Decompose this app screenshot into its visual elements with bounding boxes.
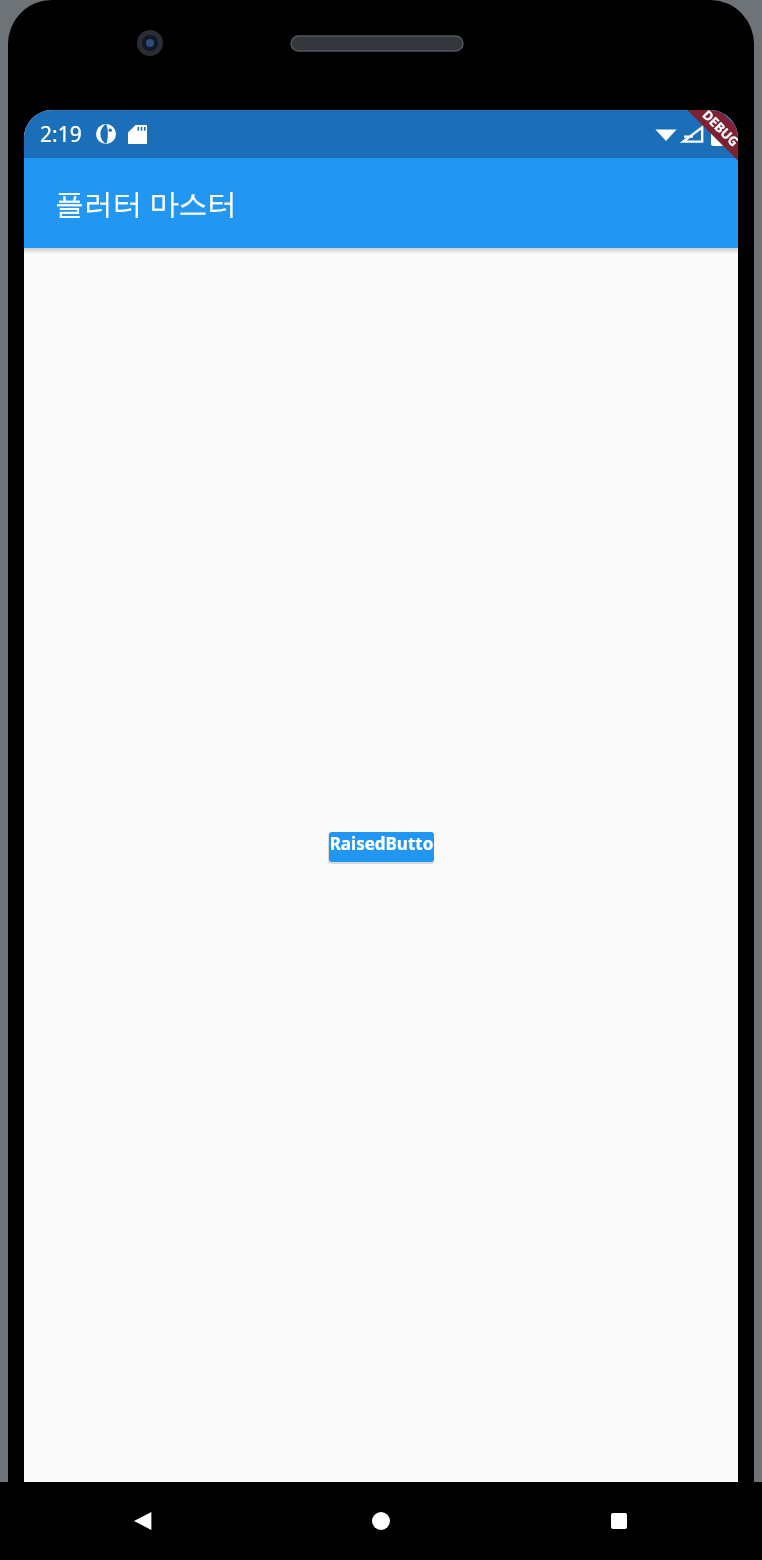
staticText: 플러터 마스터 <box>55 183 237 223</box>
button[interactable]: RaisedButton <box>329 832 434 862</box>
staticText: 2:19 <box>40 120 82 149</box>
staticText: RaisedButton <box>329 832 434 862</box>
button[interactable]: Home <box>262 1482 500 1560</box>
button[interactable]: Back <box>24 1482 262 1560</box>
button[interactable]: Recent apps <box>500 1482 738 1560</box>
staticText: DEBUG <box>699 110 738 150</box>
